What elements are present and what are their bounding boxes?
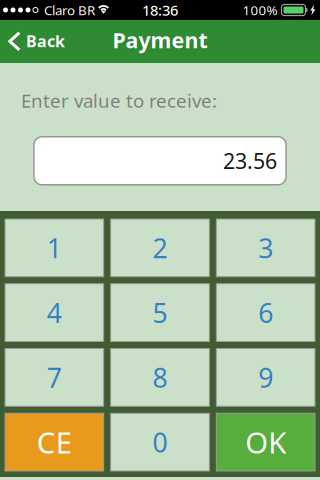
staticText: 3 [258, 230, 273, 266]
button[interactable]: 5 [111, 284, 209, 342]
button[interactable]: 4 [5, 284, 104, 342]
staticText: 7 [47, 360, 62, 395]
staticText: 23.56 [223, 147, 277, 175]
button[interactable]: Back [0, 20, 77, 63]
staticText: CE [37, 423, 72, 462]
staticText: 9 [258, 360, 273, 395]
staticText: 6 [258, 295, 273, 330]
button[interactable]: 9 [216, 348, 315, 406]
staticText: 0 [152, 424, 167, 460]
button[interactable]: 7 [5, 348, 104, 406]
staticText: 8 [152, 360, 167, 395]
staticText: 4 [47, 295, 62, 330]
button[interactable]: 6 [216, 284, 315, 342]
staticText: 18:36 [142, 0, 178, 20]
staticText: 100% [242, 1, 277, 19]
button[interactable]: CE [5, 413, 104, 471]
staticText: Payment [112, 26, 207, 54]
button[interactable]: OK [216, 413, 315, 471]
staticText: Enter value to receive: [21, 88, 217, 113]
staticText: 2 [152, 230, 167, 266]
staticText: 5 [152, 295, 167, 330]
button[interactable]: 3 [216, 219, 315, 277]
button[interactable]: 8 [111, 348, 209, 406]
staticText: 1 [47, 230, 62, 266]
staticText: Claro BR [44, 1, 95, 19]
staticText: OK [245, 423, 286, 462]
button[interactable]: 1 [5, 219, 104, 277]
staticText: Back [26, 30, 65, 52]
button[interactable]: 0 [111, 413, 209, 471]
button[interactable]: 2 [111, 219, 209, 277]
